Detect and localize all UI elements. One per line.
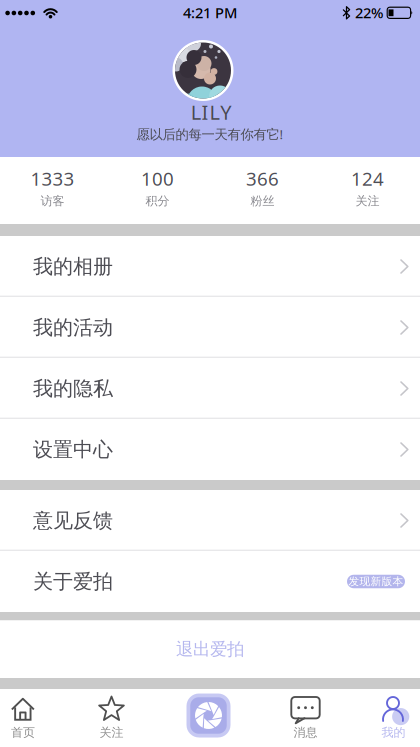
button[interactable]: 意见反馈	[0, 490, 420, 551]
staticText: LILY	[191, 99, 231, 125]
staticText: 访客	[40, 194, 64, 208]
staticText: 粉丝	[250, 194, 274, 208]
staticText: 4:21 PM	[183, 3, 237, 22]
button[interactable]: 100	[105, 157, 210, 224]
staticText: 我的活动	[33, 315, 113, 340]
button[interactable]: 1333	[0, 157, 105, 224]
button[interactable]: 消息	[267, 689, 343, 747]
button[interactable]: 我的隐私	[0, 358, 420, 419]
button[interactable]: 关注	[73, 689, 149, 747]
staticText: 124	[351, 166, 384, 191]
button[interactable]: 366	[210, 157, 315, 224]
button[interactable]: 退出爱拍	[0, 620, 420, 678]
button[interactable]: 我的活动	[0, 297, 420, 358]
staticText: 首页	[11, 725, 35, 740]
staticText: 我的隐私	[33, 376, 113, 401]
staticText: 366	[246, 166, 279, 191]
button[interactable]: 我的相册	[0, 236, 420, 297]
staticText: 关于爱拍	[33, 569, 113, 594]
staticText: 意见反馈	[33, 508, 113, 533]
staticText: 100	[141, 166, 174, 191]
staticText: 22%	[355, 3, 383, 22]
button[interactable]: 头像	[172, 40, 233, 101]
button[interactable]: 124	[315, 157, 420, 224]
button[interactable]: 设置中心	[0, 419, 420, 480]
staticText: 我的	[381, 725, 405, 740]
staticText: 设置中心	[33, 437, 113, 462]
button[interactable]: 首页	[0, 689, 61, 747]
staticText: 关注	[355, 194, 379, 208]
staticText: 1333	[30, 166, 74, 191]
staticText: 退出爱拍	[176, 639, 244, 660]
staticText: 关注	[99, 725, 123, 740]
staticText: 愿以后的每一天有你有它!	[136, 125, 283, 143]
button[interactable]: 我的	[355, 689, 420, 747]
button[interactable]: 关于爱拍	[0, 551, 420, 612]
staticText: 消息	[293, 725, 317, 740]
staticText: 积分	[145, 194, 169, 208]
staticText: 发现新版本	[348, 575, 403, 588]
staticText: 我的相册	[33, 254, 113, 279]
button[interactable]: 拍摄	[186, 693, 230, 737]
